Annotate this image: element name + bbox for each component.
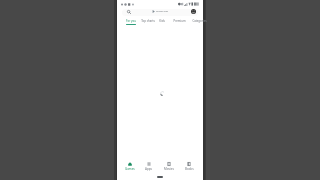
staticText: Apps xyxy=(145,167,153,171)
staticText: Google Play xyxy=(156,10,169,13)
button[interactable]: Books xyxy=(179,159,199,174)
button[interactable]: Account xyxy=(191,9,196,14)
button[interactable]: Kids xyxy=(154,18,170,24)
button[interactable]: Games xyxy=(120,159,139,174)
staticText: Top charts xyxy=(141,19,155,23)
button[interactable]: Premium xyxy=(169,18,189,24)
staticText: For you xyxy=(126,19,136,23)
staticText: Categories xyxy=(192,19,207,23)
button[interactable]: Search xyxy=(126,9,131,14)
staticText: Kids xyxy=(159,19,165,23)
staticText: Books xyxy=(185,167,194,171)
staticText: Premium xyxy=(173,19,186,23)
button[interactable]: Categories xyxy=(190,18,208,24)
button[interactable]: For you xyxy=(122,18,140,24)
staticText: Movies xyxy=(164,167,174,171)
button[interactable]: Movies xyxy=(159,159,179,174)
button[interactable]: Apps xyxy=(139,159,159,174)
button[interactable]: Top charts xyxy=(137,18,159,24)
staticText: Games xyxy=(125,167,135,171)
